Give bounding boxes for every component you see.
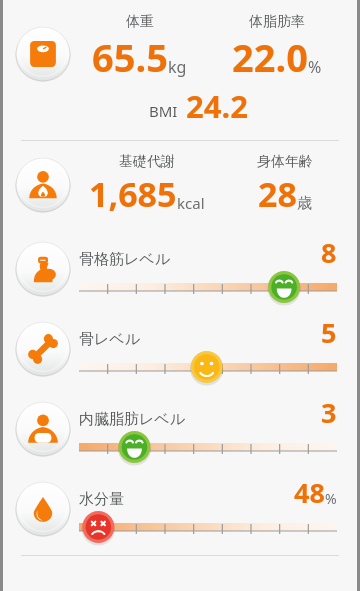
staticText: 8 <box>321 234 337 271</box>
staticText: 基礎代謝 <box>119 153 175 171</box>
button[interactable]: Visceral fat level <box>15 401 71 457</box>
button[interactable]: Skeletal muscle level <box>15 241 71 297</box>
button[interactable]: Bone level <box>15 321 71 377</box>
staticText: 身体年齢 <box>257 153 313 171</box>
staticText: 体脂肪率 <box>249 13 305 31</box>
staticText: 28 <box>258 171 297 217</box>
staticText: 水分量 <box>79 490 294 509</box>
staticText: BMI <box>149 101 178 121</box>
staticText: kg <box>168 56 187 78</box>
staticText: 65.5 <box>92 31 168 83</box>
staticText: kcal <box>177 193 205 213</box>
button[interactable]: Body water <box>3 469 357 549</box>
button[interactable]: Bone level <box>3 309 357 389</box>
staticText: 体重 <box>126 13 154 31</box>
staticText: % <box>308 56 322 78</box>
staticText: 5 <box>321 314 337 351</box>
button[interactable]: Visceral fat level <box>3 389 357 469</box>
staticText: 骨レベル <box>79 330 321 349</box>
staticText: 22.0 <box>232 31 308 83</box>
button[interactable]: Basal metabolism <box>15 157 71 213</box>
button[interactable]: Basal metabolism <box>3 141 357 229</box>
staticText: 48 <box>294 474 325 511</box>
button[interactable]: Weight scale <box>3 0 357 140</box>
staticText: 内臓脂肪レベル <box>79 410 321 429</box>
staticText: 骨格筋レベル <box>79 250 321 269</box>
staticText: 24.2 <box>186 85 248 127</box>
staticText: 歳 <box>297 194 312 213</box>
staticText: 1,685 <box>89 171 177 217</box>
button[interactable]: Weight scale <box>15 26 71 82</box>
staticText: 3 <box>321 394 337 431</box>
button[interactable]: Body water <box>15 481 71 537</box>
staticText: % <box>325 489 337 508</box>
button[interactable]: Skeletal muscle level <box>3 229 357 309</box>
